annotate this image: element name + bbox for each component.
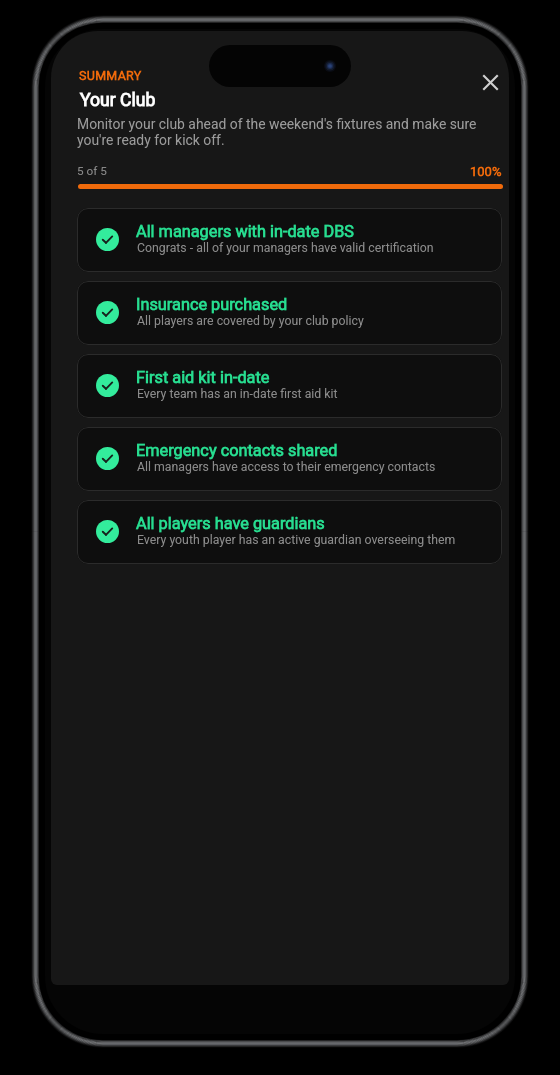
staticText: Every team has an in-date first aid kit bbox=[137, 387, 338, 401]
staticText: 100% bbox=[470, 164, 502, 179]
staticText: Congrats - all of your managers have val… bbox=[137, 241, 434, 255]
staticText: SUMMARY bbox=[79, 68, 142, 83]
staticText: All players are covered by your club pol… bbox=[137, 314, 364, 328]
staticText: All players have guardians bbox=[136, 514, 325, 533]
staticText: 5 of 5 bbox=[77, 164, 107, 178]
staticText: All managers with in-date DBS bbox=[136, 222, 355, 241]
button[interactable]: All players have guardians bbox=[77, 500, 502, 564]
button[interactable]: All managers with in-date DBS bbox=[77, 208, 502, 272]
staticText: Insurance purchased bbox=[136, 295, 288, 314]
staticText: All managers have access to their emerge… bbox=[137, 460, 436, 474]
button[interactable]: Insurance purchased bbox=[77, 281, 502, 345]
button[interactable]: Emergency contacts shared bbox=[77, 427, 502, 491]
button[interactable]: First aid kit in-date bbox=[77, 354, 502, 418]
staticText: Monitor your club ahead of the weekend's… bbox=[77, 116, 481, 148]
staticText: Your Club bbox=[80, 90, 156, 111]
button[interactable]: Close bbox=[473, 65, 507, 99]
staticText: Every youth player has an active guardia… bbox=[137, 533, 456, 547]
staticText: Emergency contacts shared bbox=[136, 441, 338, 460]
staticText: First aid kit in-date bbox=[136, 368, 270, 387]
